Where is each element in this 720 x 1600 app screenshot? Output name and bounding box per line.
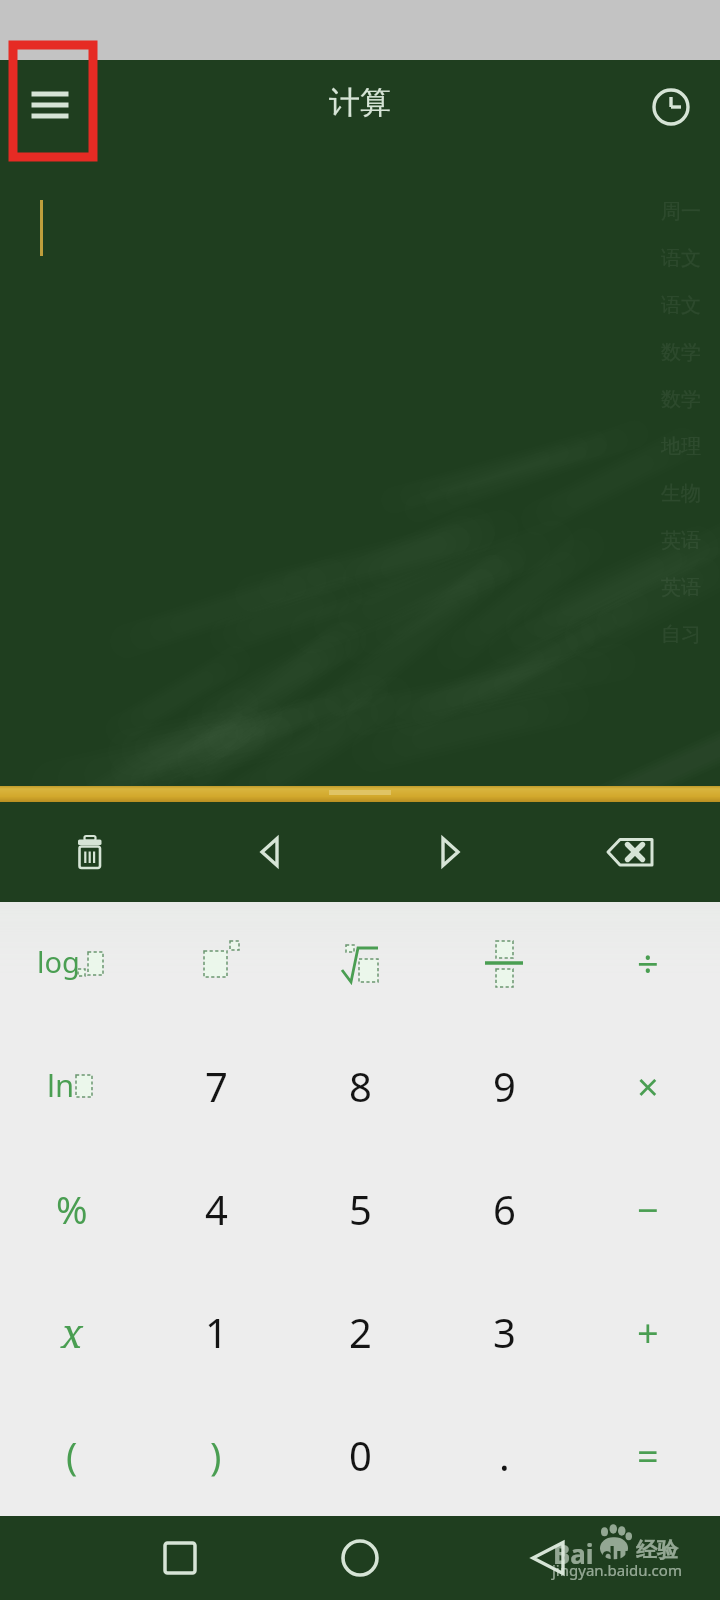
button[interactable]: Home xyxy=(328,1526,392,1590)
staticText: . xyxy=(499,1428,510,1482)
button[interactable]: 3 xyxy=(432,1270,576,1393)
staticText: ) xyxy=(210,1429,222,1481)
staticText: = xyxy=(637,1429,659,1481)
staticText: x xyxy=(61,1305,83,1359)
button[interactable] xyxy=(144,902,288,1024)
staticText: log xyxy=(37,942,80,981)
button[interactable]: Recents xyxy=(148,1526,212,1590)
staticText: 语文 xyxy=(661,246,701,271)
staticText: − xyxy=(637,1183,659,1235)
button[interactable]: = xyxy=(576,1393,720,1516)
staticText: Bai xyxy=(553,1536,594,1571)
staticText: 6 xyxy=(493,1182,516,1236)
button[interactable]: Menu xyxy=(18,73,82,137)
button[interactable]: log xyxy=(0,902,144,1024)
button[interactable]: Backspace xyxy=(540,802,720,902)
button[interactable]: + xyxy=(576,1270,720,1393)
staticText: 地理 xyxy=(661,434,701,459)
button[interactable] xyxy=(432,902,576,1024)
staticText: 数学 xyxy=(661,340,701,365)
staticText: 9 xyxy=(493,1059,516,1113)
button[interactable]: 1 xyxy=(144,1270,288,1393)
staticText: 英语 xyxy=(661,528,701,553)
button[interactable]: ( xyxy=(0,1393,144,1516)
button[interactable]: 8 xyxy=(288,1024,432,1147)
staticText: jingyan.baidu.com xyxy=(552,1560,682,1580)
staticText: ( xyxy=(66,1429,78,1481)
button[interactable]: 9 xyxy=(432,1024,576,1147)
staticText: ln xyxy=(47,1064,75,1106)
staticText: 4 xyxy=(205,1182,228,1236)
button[interactable]: Move left xyxy=(180,802,360,902)
button[interactable]: 2 xyxy=(288,1270,432,1393)
staticText: 生物 xyxy=(661,481,701,506)
staticText: du xyxy=(601,1539,631,1570)
staticText: 自习 xyxy=(661,622,701,647)
button[interactable]: Move right xyxy=(360,802,540,902)
button[interactable] xyxy=(288,902,432,1024)
button[interactable]: Clear xyxy=(0,802,180,902)
staticText: 2 xyxy=(349,1305,372,1359)
staticText: 计算 xyxy=(329,83,391,122)
staticText: 语文 xyxy=(661,293,701,318)
staticText: 8 xyxy=(349,1059,372,1113)
button[interactable]: History xyxy=(643,79,699,135)
staticText: 0 xyxy=(349,1428,372,1482)
staticText: 周一 xyxy=(661,199,701,224)
button[interactable]: . xyxy=(432,1393,576,1516)
button[interactable]: × xyxy=(576,1024,720,1147)
staticText: × xyxy=(637,1060,659,1112)
staticText: 3 xyxy=(493,1305,516,1359)
button[interactable]: 0 xyxy=(288,1393,432,1516)
staticText: 5 xyxy=(349,1182,372,1236)
button[interactable]: ) xyxy=(144,1393,288,1516)
staticText: 英语 xyxy=(661,575,701,600)
button[interactable]: % xyxy=(0,1147,144,1270)
button[interactable]: 5 xyxy=(288,1147,432,1270)
button[interactable]: Back xyxy=(516,1526,580,1590)
staticText: 7 xyxy=(205,1059,228,1113)
button[interactable]: ÷ xyxy=(576,902,720,1024)
staticText: + xyxy=(637,1306,659,1358)
staticText: ÷ xyxy=(637,937,659,989)
staticText: 数学 xyxy=(661,387,701,412)
button[interactable]: − xyxy=(576,1147,720,1270)
staticText: 1 xyxy=(205,1305,228,1359)
button[interactable]: 4 xyxy=(144,1147,288,1270)
staticText: 经验 xyxy=(636,1537,678,1563)
button[interactable]: x xyxy=(0,1270,144,1393)
button[interactable]: 6 xyxy=(432,1147,576,1270)
button[interactable]: ln xyxy=(0,1024,144,1147)
staticText: % xyxy=(56,1183,88,1235)
button[interactable]: 7 xyxy=(144,1024,288,1147)
